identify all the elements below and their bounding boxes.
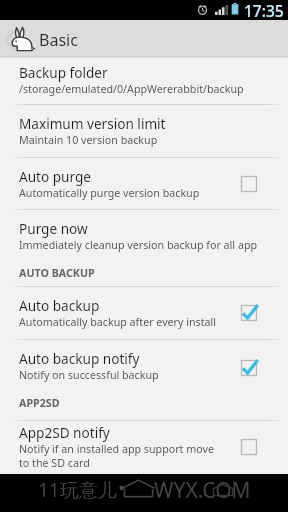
button[interactable]: App2SD notify — [0, 421, 288, 479]
staticText: AUTO BACKUP — [19, 266, 95, 281]
button[interactable]: Backup folder — [0, 58, 288, 104]
staticText: Auto backup — [19, 296, 100, 315]
staticText: Basic — [39, 29, 78, 51]
staticText: Notify on successful backup — [19, 368, 159, 383]
button[interactable]: Auto purge — [0, 158, 288, 209]
staticText: App2SD notify — [19, 423, 110, 442]
staticText: Notify if an installed app support move … — [19, 442, 214, 470]
button[interactable]: Checked — [236, 300, 262, 326]
button[interactable]: Purge now — [0, 210, 288, 266]
button[interactable]: Unchecked — [236, 434, 262, 460]
staticText: Maintain 10 version backup — [19, 133, 158, 148]
staticText: Automatically backup after every install — [19, 315, 217, 330]
button[interactable]: Checked — [236, 355, 262, 381]
button[interactable]: Unchecked — [236, 171, 262, 197]
button[interactable]: Maximum version limit — [0, 105, 288, 157]
staticText: Immediately cleanup version backup for a… — [19, 238, 258, 253]
staticText: Auto purge — [19, 167, 92, 186]
staticText: Purge now — [19, 219, 88, 238]
button[interactable]: Auto backup — [0, 287, 288, 339]
staticText: 11玩意儿 — [38, 477, 117, 503]
staticText: Automatically purge version backup — [19, 186, 200, 201]
other: Navigate up — [3, 20, 39, 56]
staticText: WYX.COM — [154, 476, 251, 505]
staticText: Backup folder — [19, 63, 108, 82]
button[interactable]: Auto backup notify — [0, 340, 288, 396]
staticText: Auto backup notify — [19, 349, 140, 368]
staticText: /storage/emulated/0/AppWererabbit/backup — [19, 82, 244, 97]
staticText: 17:35 — [244, 0, 284, 20]
staticText: Maximum version limit — [19, 114, 166, 133]
staticText: APP2SD — [19, 396, 60, 411]
button[interactable]: Navigate up — [0, 20, 288, 56]
